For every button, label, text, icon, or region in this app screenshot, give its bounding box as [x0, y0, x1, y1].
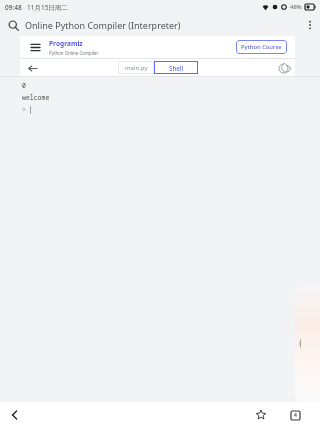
button[interactable]: Tabs, 4 open: [286, 406, 304, 424]
button[interactable]: Search: [8, 20, 19, 31]
button[interactable]: Bookmark: [252, 406, 270, 424]
button[interactable]: Collapse panel: [295, 284, 320, 402]
staticText: Python Course: [241, 43, 282, 51]
button[interactable]: Shell: [154, 61, 198, 74]
staticText: >: [22, 105, 26, 114]
staticText: Shell: [169, 64, 184, 72]
button[interactable]: Programiz: [49, 39, 99, 56]
button[interactable]: Back: [6, 406, 24, 424]
button[interactable]: Online Python Compiler (Interpreter): [25, 19, 300, 31]
button[interactable]: Menu: [28, 40, 42, 54]
staticText: 11月15日周二: [27, 3, 68, 12]
staticText: 4: [294, 412, 297, 419]
staticText: 0: [22, 81, 26, 90]
button[interactable]: Back: [24, 60, 40, 76]
staticText: main.py: [125, 64, 148, 72]
button[interactable]: More options: [300, 14, 320, 36]
staticText: 48%: [290, 3, 302, 11]
staticText: Online Python Compiler (Interpreter): [25, 19, 181, 31]
button[interactable]: main.py: [118, 61, 154, 74]
staticText: Python Online Compiler: [49, 50, 99, 56]
staticText: welcome: [22, 93, 50, 102]
button[interactable]: Python Course: [236, 40, 287, 54]
staticText: Programiz: [49, 39, 83, 48]
button[interactable]: Toggle dark mode: [276, 61, 290, 75]
staticText: 09:48: [5, 3, 22, 12]
